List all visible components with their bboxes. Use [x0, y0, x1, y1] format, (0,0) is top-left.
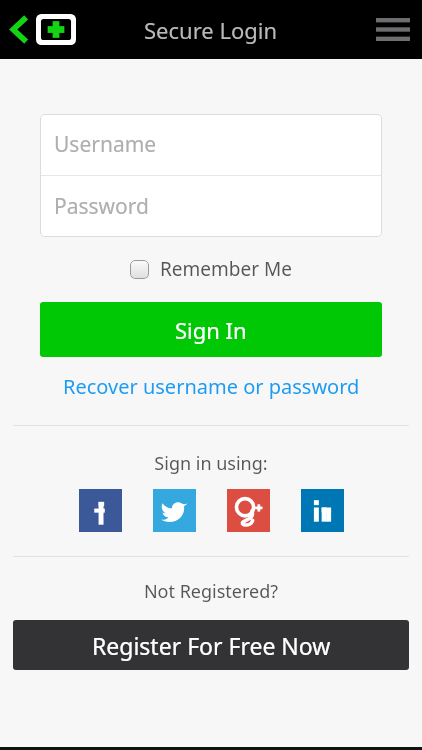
button[interactable]: Sign in with Twitter [153, 489, 196, 532]
staticText: Sign In [175, 315, 247, 345]
button[interactable]: Recover username or password [57, 370, 366, 403]
staticText: Username [54, 130, 157, 159]
button[interactable]: Sign In [40, 302, 382, 357]
staticText: Register For Free Now [92, 630, 331, 661]
staticText: Not Registered? [0, 579, 422, 604]
button[interactable]: Sign in with Google Plus [227, 489, 270, 532]
button[interactable]: Sign in with Facebook [79, 489, 122, 532]
button[interactable]: Back [6, 10, 80, 49]
button[interactable]: Menu [370, 12, 416, 47]
button[interactable]: Sign in with LinkedIn [301, 489, 344, 532]
button[interactable]: Remember Me [126, 254, 296, 284]
button[interactable]: Register For Free Now [13, 620, 409, 670]
staticText: Sign in using: [0, 451, 422, 476]
staticText: Remember Me [160, 256, 292, 282]
button[interactable]: Password [40, 176, 382, 237]
staticText: Secure Login [144, 15, 278, 45]
staticText: Password [54, 192, 149, 221]
button[interactable]: Username [40, 114, 382, 175]
